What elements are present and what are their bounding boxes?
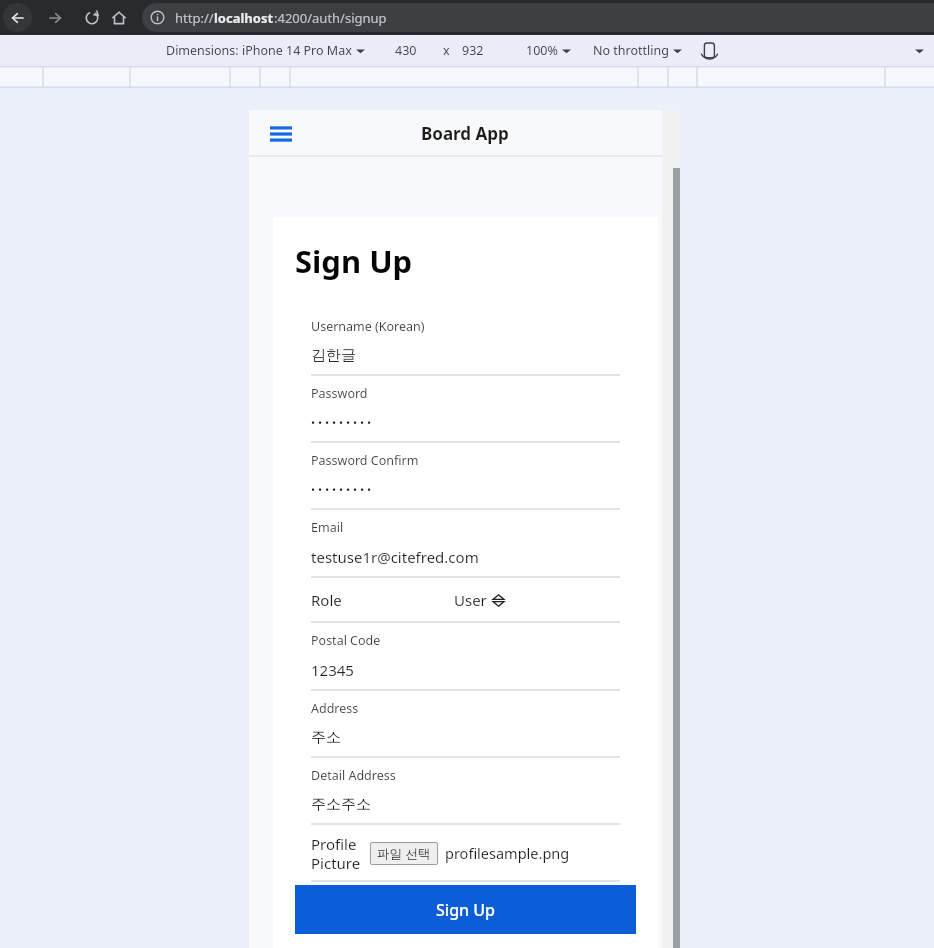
staticText: :4200/auth/signup	[274, 9, 387, 27]
button[interactable]: Rotate	[700, 41, 720, 61]
button[interactable]: Reload	[77, 3, 106, 32]
staticText: No throttling	[593, 42, 669, 59]
staticText: 파일 선택	[377, 845, 431, 862]
staticText: 김한글	[311, 346, 356, 365]
button[interactable]: Menu	[261, 114, 301, 154]
staticText: Password Confirm	[311, 452, 419, 469]
staticText: 12345	[311, 660, 354, 680]
button[interactable]: Sign Up	[295, 885, 636, 934]
staticText: Sign Up	[436, 899, 495, 921]
staticText: Sign Up	[295, 240, 413, 282]
staticText: Dimensions: iPhone 14 Pro Max	[166, 42, 352, 59]
staticText: • • • • • • • • •	[311, 415, 372, 430]
staticText: 430	[395, 42, 417, 59]
staticText: 100%	[526, 42, 558, 59]
staticText: Postal Code	[311, 632, 381, 649]
button[interactable]: Forward	[40, 3, 69, 32]
staticText: Board App	[421, 122, 509, 145]
staticText: x	[443, 42, 450, 59]
staticText: Email	[311, 519, 344, 536]
button[interactable]: 파일 선택	[370, 842, 438, 865]
staticText: 주소주소	[311, 795, 371, 814]
button[interactable]: http://	[142, 3, 934, 32]
button[interactable]: Role	[311, 578, 620, 623]
staticText: • • • • • • • • •	[311, 482, 372, 497]
staticText: User	[454, 590, 487, 610]
staticText: 주소	[311, 728, 341, 747]
staticText: testuse1r@citefred.com	[311, 547, 479, 567]
staticText: 932	[462, 42, 484, 59]
staticText: Username (Korean)	[311, 318, 425, 335]
staticText: Profile Picture	[311, 834, 361, 873]
staticText: Address	[311, 700, 359, 717]
staticText: Role	[311, 590, 342, 610]
staticText: Detail Address	[311, 767, 396, 784]
staticText: localhost	[214, 9, 274, 27]
staticText: Password	[311, 385, 368, 402]
staticText: http://	[175, 9, 214, 27]
button[interactable]: Home	[104, 3, 133, 32]
button[interactable]: Back	[3, 3, 32, 32]
staticText: profilesample.png	[445, 843, 570, 863]
button[interactable]: More options	[915, 48, 924, 54]
